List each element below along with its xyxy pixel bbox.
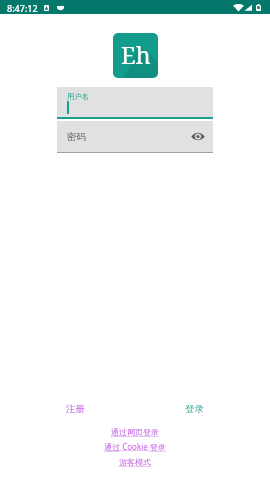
button[interactable]: 通过网页登录 [111,427,159,437]
button[interactable]: Show password [191,132,205,141]
staticText: 8:47:12 [7,2,38,14]
staticText: 登录 [185,403,204,415]
staticText: 通过 Cookie 登录 [104,441,166,452]
staticText: 用户名 [67,92,89,101]
staticText: Eh [121,39,151,71]
button[interactable]: 用户名 [57,87,213,117]
button[interactable]: 通过 Cookie 登录 [104,441,166,452]
staticText: 密码 [67,131,86,143]
staticText: 通过网页登录 [111,427,159,437]
button[interactable]: 登录 [176,400,213,424]
button[interactable]: 游客模式 [119,457,151,467]
staticText: 游客模式 [119,457,151,467]
button[interactable]: 密码 [57,121,213,152]
staticText: 注册 [66,403,85,415]
button[interactable]: 注册 [57,400,94,424]
